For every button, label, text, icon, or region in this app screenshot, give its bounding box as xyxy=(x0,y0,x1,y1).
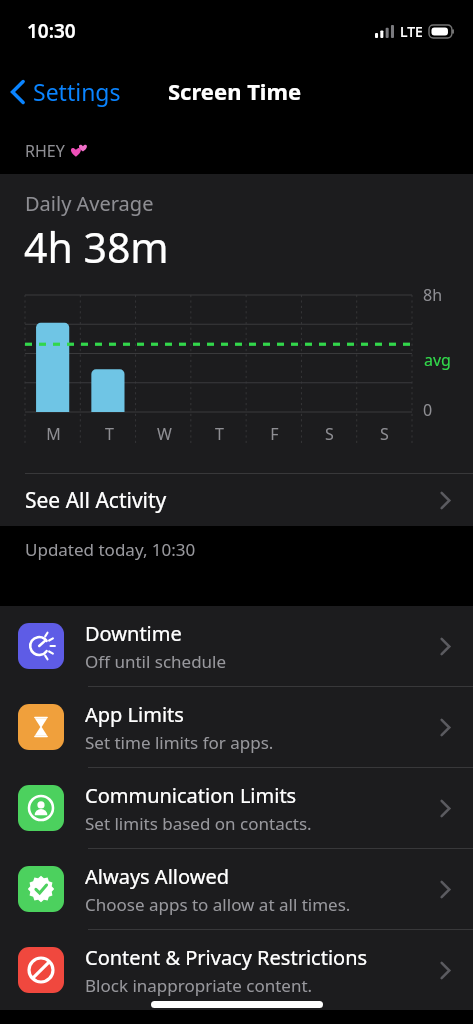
staticText: Set limits based on contacts. xyxy=(85,812,312,835)
button[interactable]: See All Activity xyxy=(0,474,473,526)
other: Open xyxy=(439,636,451,657)
other: Open xyxy=(439,490,451,511)
button[interactable]: Downtime xyxy=(0,606,473,686)
button[interactable]: Content & Privacy Restrictions xyxy=(0,930,473,1010)
button[interactable]: App Limits xyxy=(0,687,473,767)
button[interactable]: Settings xyxy=(0,70,129,113)
staticText: F xyxy=(270,423,279,445)
staticText: Updated today, 10:30 xyxy=(25,538,196,561)
staticText: Set time limits for apps. xyxy=(85,731,274,754)
staticText: avg xyxy=(424,349,451,371)
button[interactable]: Communication Limits xyxy=(0,768,473,848)
staticText: 10:30 xyxy=(27,18,76,44)
staticText: Screen Time xyxy=(168,76,302,106)
staticText: M xyxy=(46,423,61,445)
staticText: App Limits xyxy=(85,701,184,728)
staticText: LTE xyxy=(400,22,423,41)
button[interactable]: Always Allowed xyxy=(0,849,473,929)
other: Open xyxy=(439,717,451,738)
other: Open xyxy=(439,798,451,819)
staticText: RHEY xyxy=(25,140,65,162)
staticText: Off until schedule xyxy=(85,650,227,673)
staticText: W xyxy=(157,423,172,445)
staticText: Communication Limits xyxy=(85,782,297,809)
staticText: Settings xyxy=(33,76,121,107)
staticText: Choose apps to allow at all times. xyxy=(85,893,351,916)
staticText: 0 xyxy=(423,399,433,421)
staticText: S xyxy=(325,423,334,445)
staticText: T xyxy=(105,423,114,445)
staticText: Daily Average xyxy=(25,190,154,217)
staticText: 4h 38m xyxy=(24,219,169,275)
staticText: Always Allowed xyxy=(85,863,229,890)
staticText: See All Activity xyxy=(25,486,439,515)
staticText: Content & Privacy Restrictions xyxy=(85,944,368,971)
staticText: 8h xyxy=(423,284,443,306)
staticText: Block inappropriate content. xyxy=(85,974,313,997)
other: Open xyxy=(439,879,451,900)
staticText: T xyxy=(215,423,224,445)
staticText: S xyxy=(380,423,389,445)
other: Open xyxy=(439,960,451,981)
staticText: Downtime xyxy=(85,620,182,647)
